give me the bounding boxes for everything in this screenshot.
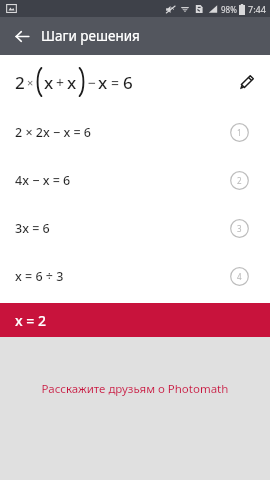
button[interactable]: x = 2 [0,303,270,337]
staticText: 7:44 [248,3,266,15]
button[interactable]: 2 × 2x − x = 6 [0,108,270,156]
staticText: × [27,75,34,90]
staticText: x = 6 ÷ 3 [15,268,64,285]
staticText: 98% [221,4,237,15]
staticText: x [98,71,108,94]
staticText: 6 [123,71,133,94]
staticText: Шаги решения [41,27,140,45]
staticText: Расскажите друзьям о Photomath [0,381,270,397]
staticText: 3x = 6 [15,220,50,237]
staticText: x [67,71,77,94]
button[interactable]: x = 6 ÷ 3 [0,252,270,300]
staticText: 1 [237,127,242,138]
staticText: 2 [15,71,25,94]
staticText: x [44,71,54,94]
button[interactable]: Back [8,22,36,50]
button[interactable]: 4x − x = 6 [0,156,270,204]
staticText: 2 [237,175,242,186]
staticText: x = 2 [15,311,46,330]
button[interactable]: Edit equation [230,66,262,98]
staticText: 4x − x = 6 [15,172,71,189]
staticText: 2 × 2x − x = 6 [15,124,92,141]
staticText: = [111,73,120,92]
staticText: − [88,73,97,92]
staticText: 3 [237,223,242,234]
staticText: 4 [237,271,242,282]
button[interactable]: 3x = 6 [0,204,270,252]
staticText: + [56,73,65,92]
button[interactable]: Расскажите друзьям о Photomath [0,337,270,480]
